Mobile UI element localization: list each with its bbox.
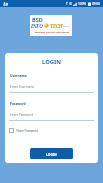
staticText: LOGIN <box>46 152 57 156</box>
staticText: 09:55 <box>92 2 101 6</box>
staticText: Password <box>10 101 26 105</box>
button[interactable]: Show Password <box>9 128 38 133</box>
staticText: T B <box>66 2 72 6</box>
staticText: Pvt. Ltd. <box>63 25 70 27</box>
staticText: Enter Password <box>10 113 34 117</box>
staticText: LOGIN <box>5 58 98 66</box>
button[interactable]: LOGIN <box>30 148 73 159</box>
staticText: Show Password <box>16 129 38 133</box>
staticText: Username <box>10 73 27 77</box>
other: Contacts <box>3 2 8 6</box>
staticText: Enter Username <box>10 85 35 89</box>
staticText: 100% <box>78 2 87 6</box>
staticText: TECH <box>50 23 63 29</box>
staticText: Business Solution Developers <box>35 30 70 33</box>
staticText: INFO <box>31 23 43 29</box>
staticText: BSD <box>32 16 43 23</box>
